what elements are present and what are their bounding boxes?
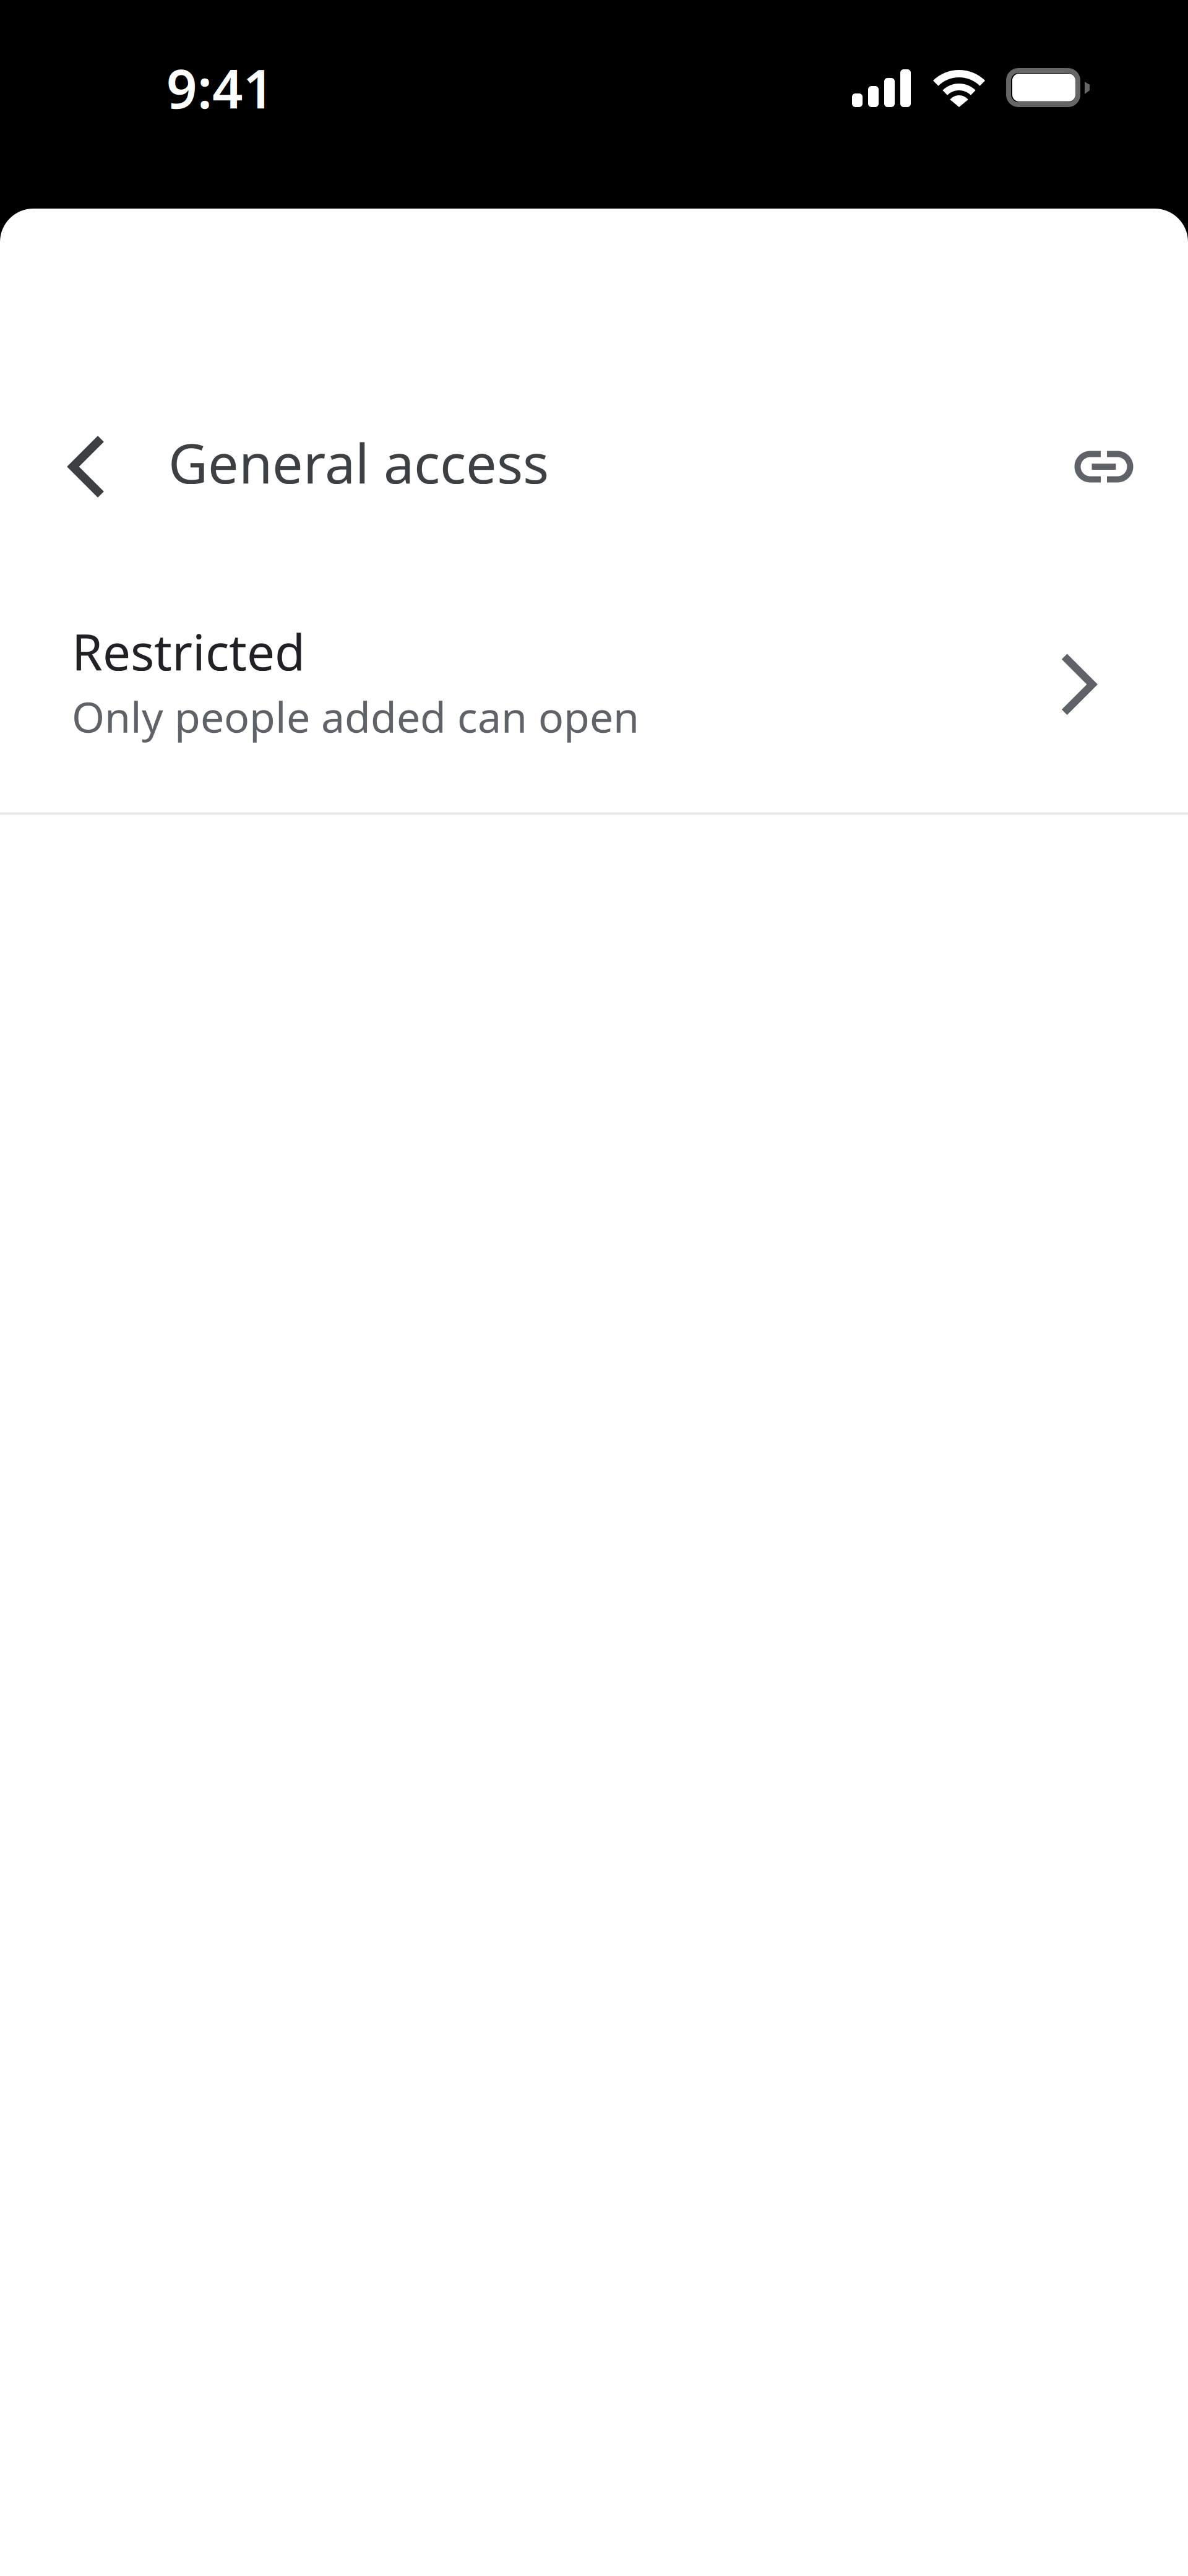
staticText: General access xyxy=(168,426,549,499)
button[interactable]: Restricted xyxy=(0,558,1188,812)
staticText: Restricted xyxy=(72,618,305,684)
button[interactable]: Copy link xyxy=(1061,423,1148,509)
staticText: Only people added can open xyxy=(72,688,639,744)
staticText: 9:41 xyxy=(166,52,274,123)
button[interactable]: Back xyxy=(41,423,128,509)
